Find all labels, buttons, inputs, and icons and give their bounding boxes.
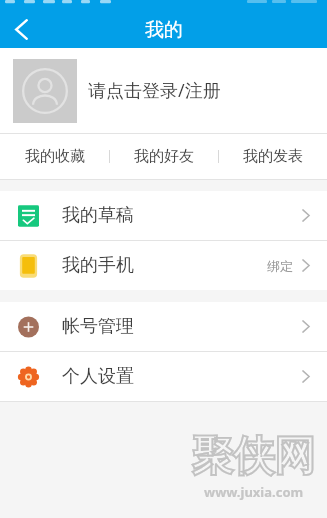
button[interactable]: Back: [0, 11, 42, 48]
staticText: 个人设置: [62, 365, 134, 388]
staticText: 帐号管理: [62, 315, 134, 338]
staticText: 聚侠网: [192, 431, 315, 483]
staticText: 我的好友: [134, 147, 194, 166]
staticText: 我的草稿: [62, 204, 134, 227]
button[interactable]: 帐号管理: [0, 302, 327, 351]
button[interactable]: 我的手机: [0, 241, 327, 290]
staticText: 我的: [145, 18, 183, 42]
staticText: 绑定: [267, 258, 293, 274]
button[interactable]: 我的草稿: [0, 191, 327, 240]
staticText: 我的发表: [243, 147, 303, 166]
staticText: 我的收藏: [25, 147, 85, 166]
button[interactable]: 我的好友: [110, 134, 218, 179]
button[interactable]: 个人设置: [0, 352, 327, 401]
staticText: 请点击登录/注册: [88, 78, 221, 103]
button[interactable]: 请点击登录/注册: [0, 48, 327, 133]
button[interactable]: 我的收藏: [0, 134, 109, 179]
staticText: www.juxia.com: [204, 483, 304, 501]
staticText: 我的手机: [62, 254, 134, 277]
button[interactable]: 我的发表: [219, 134, 327, 179]
